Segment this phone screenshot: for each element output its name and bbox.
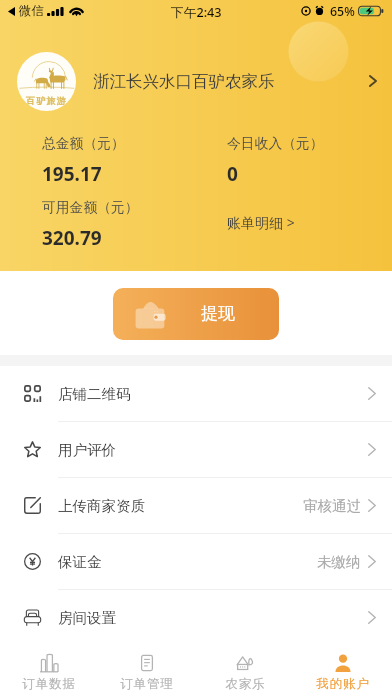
button[interactable]: 保证金 xyxy=(0,534,392,590)
staticText: 195.17 xyxy=(42,161,102,187)
staticText: 审核通过 xyxy=(303,497,361,515)
staticText: 下午2:43 xyxy=(171,3,222,20)
staticText: 订单管理 xyxy=(120,676,174,692)
staticText: 百驴旅游 xyxy=(26,95,67,106)
staticText: 可用金额（元） xyxy=(42,199,139,216)
button[interactable]: 我的账户 xyxy=(294,645,392,696)
button[interactable]: 房间设置 xyxy=(0,590,392,646)
staticText: 320.79 xyxy=(42,225,102,251)
staticText: 0 xyxy=(227,161,238,187)
staticText: 上传商家资质 xyxy=(58,497,145,515)
staticText: 账单明细 > xyxy=(227,213,295,232)
staticText: 农家乐 xyxy=(225,676,266,692)
staticText: 用户评价 xyxy=(58,441,116,459)
button[interactable]: 订单数据 xyxy=(0,645,98,696)
button[interactable]: 店铺二维码 xyxy=(0,366,392,422)
staticText: 订单数据 xyxy=(22,676,76,692)
staticText: 提现 xyxy=(201,303,235,324)
button[interactable]: 提现 xyxy=(113,288,279,340)
button[interactable]: 账单明细 > xyxy=(227,213,295,232)
staticText: 我的账户 xyxy=(316,676,370,692)
staticText: 保证金 xyxy=(58,553,102,571)
button[interactable]: 用户评价 xyxy=(0,422,392,478)
button[interactable]: 农家乐 xyxy=(196,645,294,696)
staticText: 店铺二维码 xyxy=(58,385,131,403)
button[interactable]: 百驴旅游 xyxy=(0,51,392,111)
button[interactable]: 上传商家资质 xyxy=(0,478,392,534)
staticText: 总金额（元） xyxy=(42,135,125,152)
staticText: 房间设置 xyxy=(58,609,116,627)
staticText: 未缴纳 xyxy=(317,553,361,571)
staticText: 今日收入（元） xyxy=(227,135,324,152)
staticText: 浙江长兴水口百驴农家乐 xyxy=(93,71,275,92)
staticText: 微信 xyxy=(19,3,44,19)
staticText: 65% xyxy=(330,3,355,20)
button[interactable]: 订单管理 xyxy=(98,645,196,696)
